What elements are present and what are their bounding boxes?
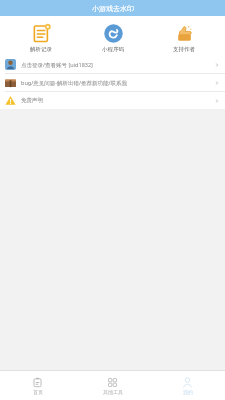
button[interactable]: 点击登录/查看账号 [uid1832] [0, 56, 225, 73]
staticText: 我的 [183, 389, 193, 395]
staticText: 解析记录 [30, 46, 52, 53]
staticText: 点击登录/查看账号 [uid1832] [21, 61, 93, 69]
staticText: 小游戏去水印 [92, 4, 134, 13]
button[interactable]: 首页 [0, 371, 75, 400]
staticText: 小程序码 [102, 46, 124, 53]
staticText: 其他工具 [103, 389, 123, 395]
staticText: 首页 [33, 389, 43, 395]
staticText: 支持作者 [173, 46, 195, 53]
button[interactable]: 其他工具 [75, 371, 150, 400]
button[interactable]: 小程序码 [83, 20, 143, 53]
staticText: 免责声明 [21, 97, 43, 104]
button[interactable]: bug/意见问题-解析出错/推荐新功能/联系我 [0, 74, 225, 91]
button[interactable]: 支持作者 [154, 20, 214, 53]
button[interactable]: 免责声明 [0, 92, 225, 109]
button[interactable]: 解析记录 [11, 20, 71, 53]
staticText: bug/意见问题-解析出错/推荐新功能/联系我 [21, 79, 128, 87]
button[interactable]: 我的 [150, 371, 225, 400]
